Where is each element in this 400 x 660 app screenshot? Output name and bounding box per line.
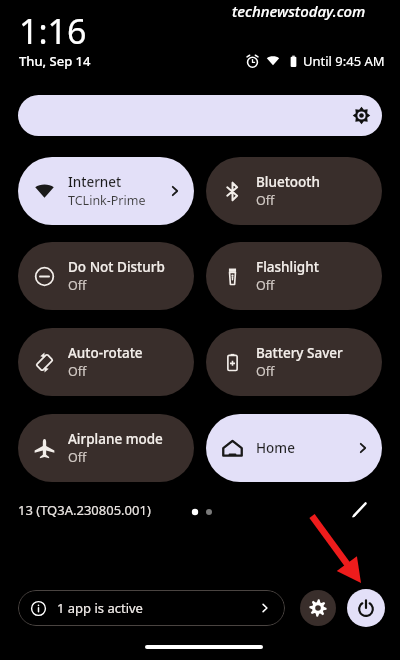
staticText: Flashlight: [256, 258, 319, 276]
staticText: Thu, Sep 14: [19, 52, 91, 70]
button[interactable]: Do Not Disturb: [18, 242, 194, 310]
staticText: Until 9:45 AM: [303, 52, 385, 70]
staticText: Off: [256, 277, 275, 294]
button[interactable]: Settings: [300, 590, 336, 626]
staticText: Off: [256, 363, 275, 380]
button[interactable]: Bluetooth: [206, 157, 382, 225]
button[interactable]: Brightness: [18, 95, 382, 136]
staticText: Off: [68, 449, 87, 466]
button[interactable]: Internet: [18, 157, 194, 225]
staticText: Auto-rotate: [68, 344, 143, 362]
button[interactable]: Airplane mode: [18, 414, 194, 482]
staticText: technewstoday.com: [232, 1, 366, 21]
button[interactable]: Power: [347, 589, 385, 627]
staticText: Do Not Disturb: [68, 258, 165, 276]
staticText: 1 app is active: [57, 599, 259, 617]
staticText: 13 (TQ3A.230805.001): [18, 501, 151, 519]
button[interactable]: Home: [206, 414, 382, 482]
button[interactable]: 1 app is active: [18, 590, 285, 626]
button[interactable]: Flashlight: [206, 242, 382, 310]
staticText: Internet: [68, 173, 122, 191]
staticText: 1:16: [19, 8, 87, 54]
staticText: Home: [256, 439, 295, 457]
staticText: Off: [256, 192, 275, 209]
staticText: Off: [68, 277, 87, 294]
staticText: Off: [68, 363, 87, 380]
staticText: TCLink-Prime: [68, 192, 146, 209]
staticText: Battery Saver: [256, 344, 343, 362]
staticText: Bluetooth: [256, 173, 320, 191]
button[interactable]: Edit tiles: [345, 495, 373, 523]
button[interactable]: Auto-rotate: [18, 328, 194, 396]
staticText: Airplane mode: [68, 430, 163, 448]
button[interactable]: Battery Saver: [206, 328, 382, 396]
